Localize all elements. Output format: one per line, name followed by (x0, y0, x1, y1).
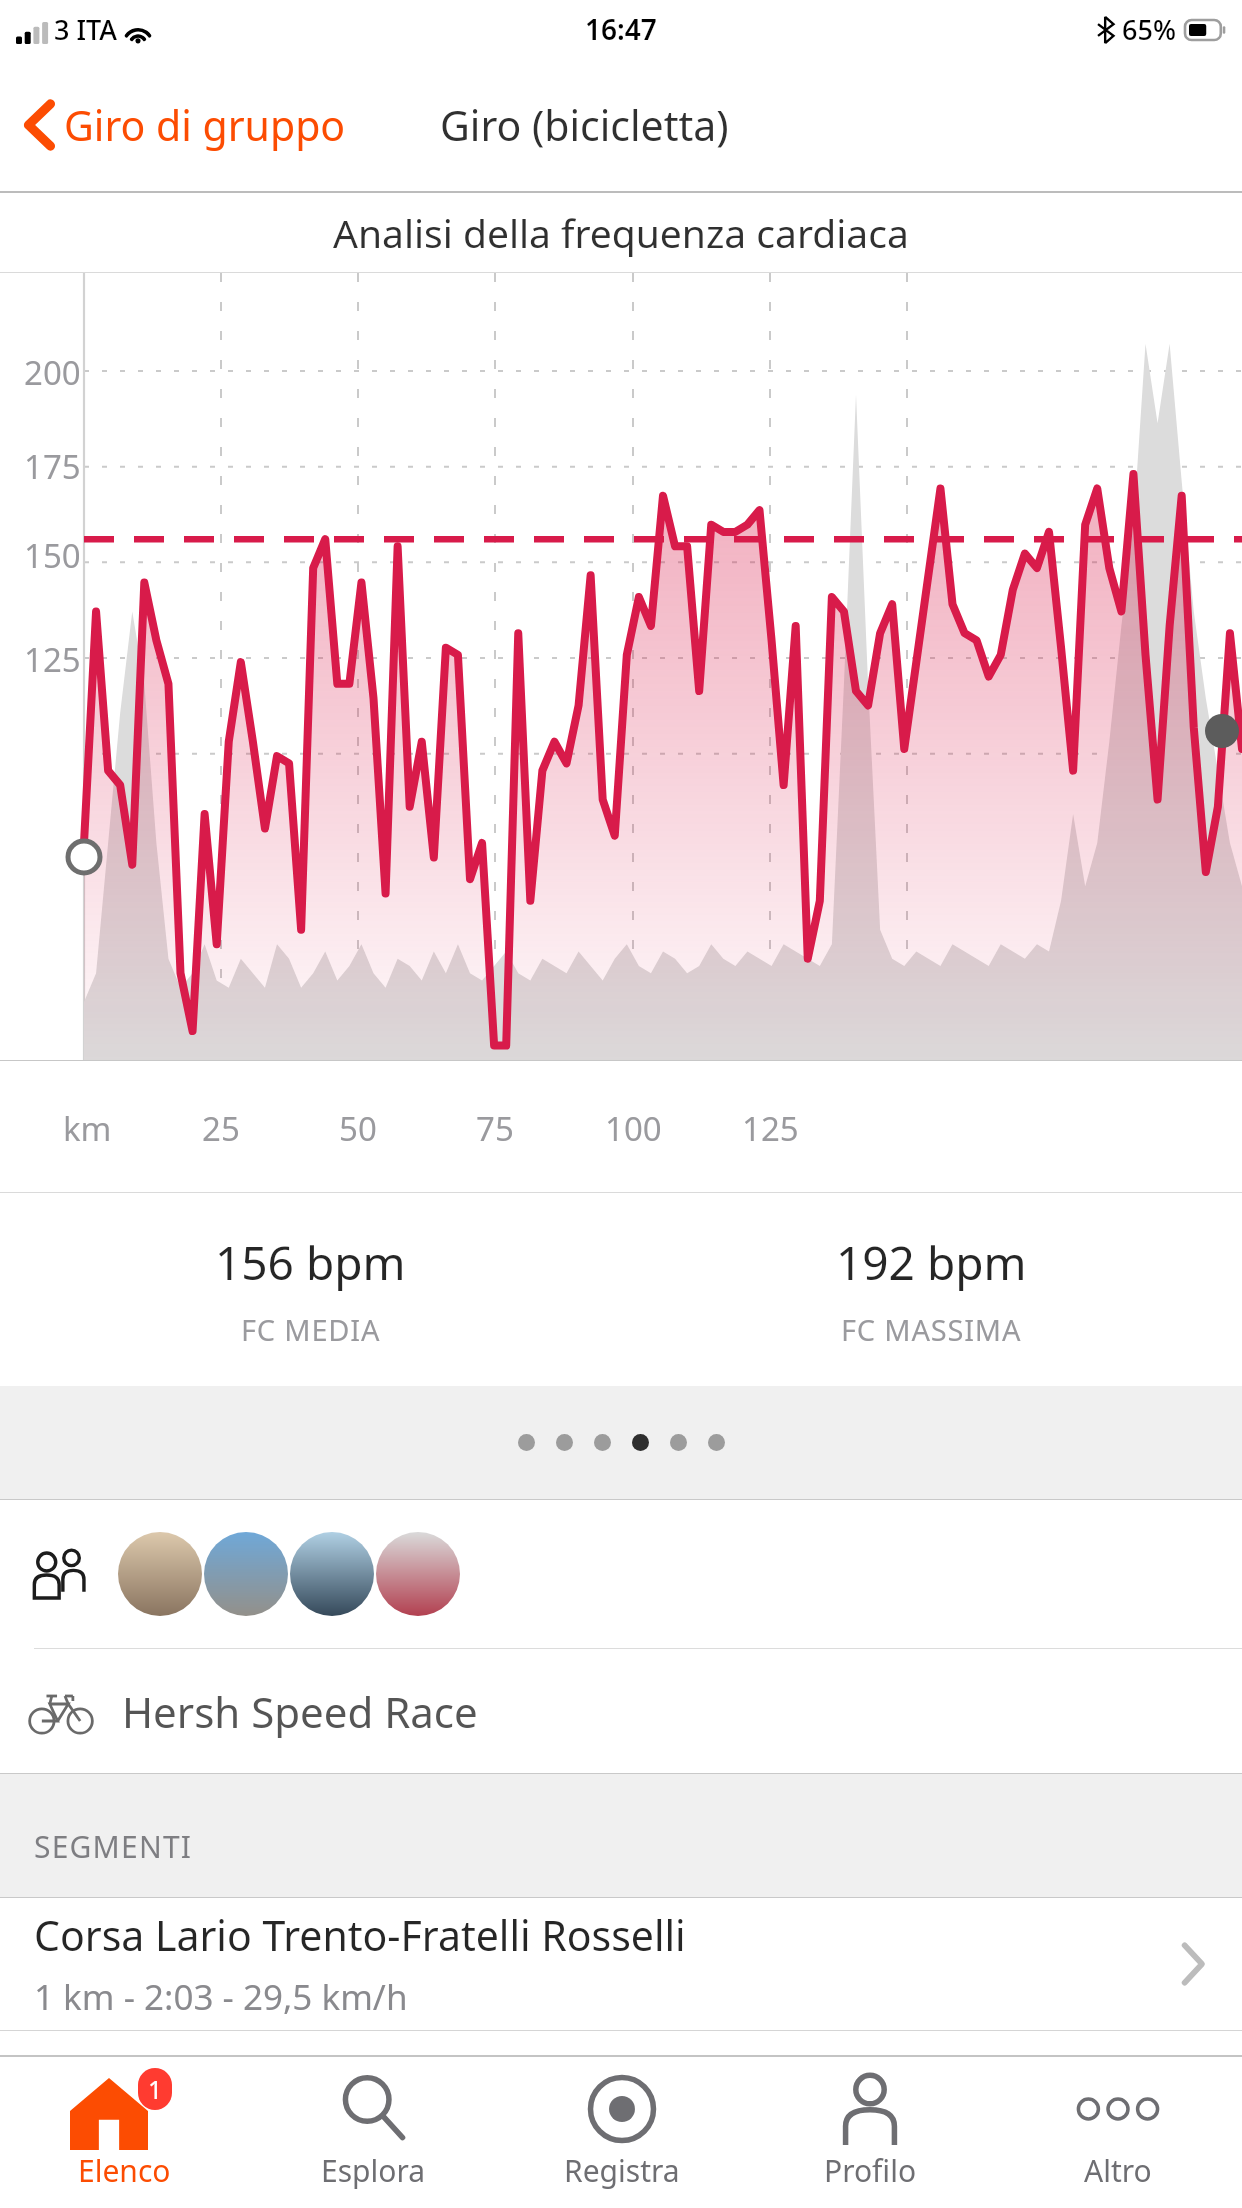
button[interactable] (118, 1532, 202, 1616)
staticText: 65% (1122, 11, 1176, 48)
staticText: 75 (476, 1106, 514, 1151)
staticText: 125 (742, 1106, 799, 1151)
button[interactable]: Giro di gruppo (0, 83, 356, 167)
staticText: km (63, 1106, 112, 1151)
button[interactable]: Elenco (0, 2057, 249, 2208)
staticText: Registra (564, 2150, 680, 2191)
staticText: 150 (24, 533, 81, 578)
staticText: Profilo (824, 2150, 917, 2191)
button[interactable]: Profilo (746, 2057, 994, 2208)
button[interactable]: Altro (994, 2057, 1242, 2208)
staticText: SEGMENTI (34, 1826, 193, 1867)
staticText: FC MEDIA (241, 1310, 381, 1349)
button[interactable]: Esplora (249, 2057, 498, 2208)
button[interactable] (290, 1532, 374, 1616)
staticText: Corsa Lario Trento-Fratelli Rosselli (34, 1907, 686, 1963)
staticText: Analisi della frequenza cardiaca (333, 206, 909, 259)
staticText: Giro (bicicletta) (440, 97, 729, 153)
staticText: 200 (24, 350, 81, 395)
staticText: 3 ITA (54, 11, 117, 48)
staticText: 175 (24, 444, 81, 489)
staticText: 50 (339, 1106, 377, 1151)
staticText: 1 km - 2:03 - 29,5 km/h (34, 1973, 408, 2021)
staticText: Esplora (321, 2150, 426, 2191)
button[interactable]: Hersh Speed Race (0, 1649, 1242, 1773)
staticText: Hersh Speed Race (122, 1683, 478, 1740)
button[interactable] (204, 1532, 288, 1616)
button[interactable]: Corsa Lario Trento-Fratelli Rosselli (0, 1898, 1242, 2030)
button[interactable]: Registra (498, 2057, 746, 2208)
staticText: 25 (202, 1106, 240, 1151)
button[interactable] (376, 1532, 460, 1616)
staticText: 100 (605, 1106, 662, 1151)
staticText: FC MASSIMA (841, 1310, 1022, 1349)
staticText: Altro (1084, 2150, 1152, 2191)
staticText: Elenco (78, 2150, 171, 2191)
staticText: 156 bpm (215, 1231, 406, 1294)
staticText: 1 (148, 2072, 163, 2106)
staticText: 192 bpm (836, 1231, 1027, 1294)
staticText: Giro di gruppo (64, 97, 346, 153)
staticText: 16:47 (585, 10, 657, 48)
staticText: 125 (24, 637, 81, 682)
button[interactable] (0, 1500, 1242, 1648)
